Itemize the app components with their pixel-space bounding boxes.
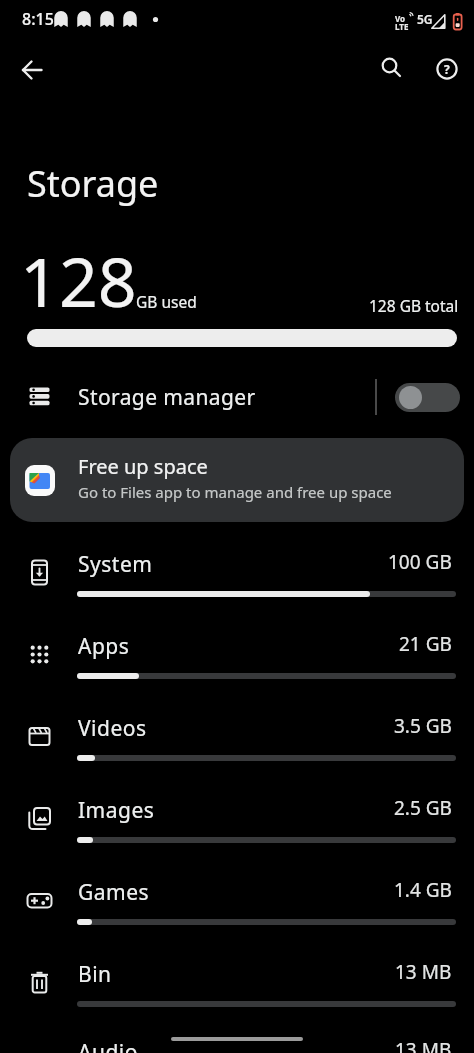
staticText: 3.5 GB [394, 713, 452, 739]
staticText: System [78, 550, 153, 579]
staticText: 1.4 GB [394, 877, 452, 903]
staticText: Free up space [78, 453, 208, 480]
button[interactable] [369, 46, 415, 92]
staticText: 13 MB [395, 1037, 452, 1053]
button[interactable]: Videos [0, 698, 474, 780]
staticText: 13 MB [395, 959, 452, 985]
button[interactable]: Apps [0, 616, 474, 698]
staticText: Apps [78, 632, 130, 661]
staticText: Audio [78, 1038, 138, 1053]
button[interactable]: Storage manager [0, 366, 474, 428]
staticText: GB used [136, 291, 197, 312]
button[interactable] [8, 46, 56, 94]
button[interactable] [395, 383, 460, 412]
staticText: Games [78, 878, 150, 907]
button[interactable]: Free up space [10, 438, 464, 522]
button[interactable]: ? [424, 46, 470, 92]
staticText: ? [444, 61, 450, 77]
staticText: 5G [417, 11, 433, 27]
button[interactable]: Images [0, 780, 474, 862]
staticText: Videos [78, 714, 147, 743]
button[interactable]: System [0, 534, 474, 616]
staticText: 2.5 GB [394, 795, 452, 821]
staticText: Storage manager [78, 383, 256, 412]
button[interactable]: Audio [0, 1022, 474, 1053]
staticText: 128 [20, 234, 137, 327]
staticText: Bin [78, 960, 112, 989]
staticText: 128 GB total [369, 295, 459, 316]
staticText: 8:15 [22, 8, 54, 30]
button[interactable]: Bin [0, 944, 474, 1026]
staticText: Vo [395, 13, 406, 24]
staticText: Storage [27, 159, 159, 208]
staticText: 21 GB [399, 631, 452, 657]
staticText: Images [78, 796, 155, 825]
button[interactable]: Games [0, 862, 474, 944]
staticText: 100 GB [388, 549, 452, 575]
staticText: LTE [395, 21, 409, 32]
staticText: Go to Files app to manage and free up sp… [78, 482, 392, 502]
